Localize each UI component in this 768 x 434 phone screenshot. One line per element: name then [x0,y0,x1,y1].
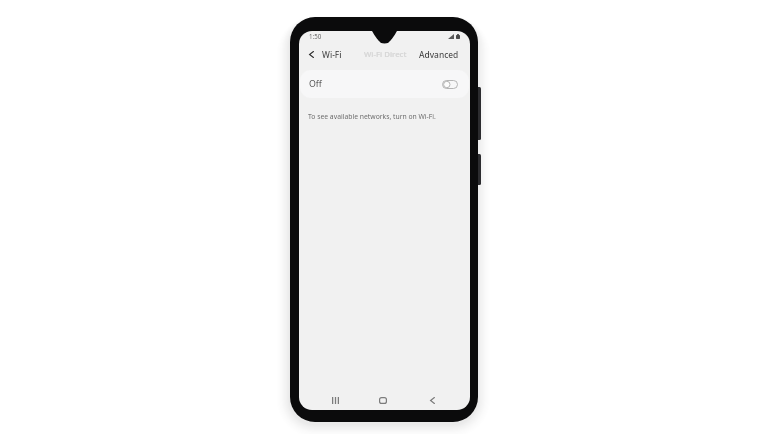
staticText: To see available networks, turn on Wi-Fi… [308,112,436,121]
staticText: 1:50 [309,32,322,40]
button[interactable]: Recent apps [321,388,349,410]
button[interactable]: Off [300,70,469,98]
button[interactable]: Advanced [419,49,459,60]
button[interactable]: Navigate up [300,43,342,65]
button[interactable]: Back [418,388,446,410]
staticText: Off [309,78,322,90]
other: Navigate up [300,43,322,65]
button[interactable]: Home [369,388,397,410]
button[interactable]: Wi-Fi Direct [364,49,407,60]
staticText: Wi-Fi [322,49,342,60]
